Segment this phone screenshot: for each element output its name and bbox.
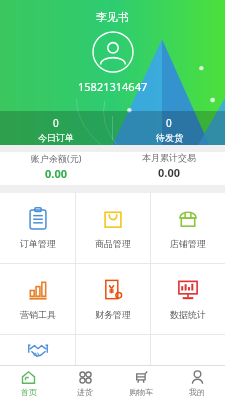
button[interactable]: 订单管理 [0,193,75,263]
button[interactable]: 本月累计交易 [112,152,225,180]
button[interactable]: 财务管理 [76,264,150,334]
staticText: 今日订单 [38,132,74,143]
button[interactable]: 数据统计 [151,264,225,334]
staticText: 0 [53,116,59,130]
staticText: 待发货 [156,132,183,143]
staticText: 数据统计 [170,309,206,320]
staticText: 购物车 [129,387,153,397]
button[interactable]: 0 [113,111,225,143]
staticText: 店铺管理 [170,238,206,249]
staticText: 首页 [21,387,37,397]
staticText: 我的 [189,387,205,397]
staticText: 0.00 [158,165,180,180]
button[interactable]: 商品管理 [76,193,150,263]
button[interactable]: 首页 [0,366,57,400]
button[interactable]: 0 [0,111,112,143]
staticText: 15821314647 [78,79,148,94]
staticText: 0 [166,116,172,130]
staticText: 进货 [77,387,93,397]
staticText: 财务管理 [95,309,131,320]
button[interactable]: 进货 [57,366,113,400]
staticText: 订单管理 [20,238,56,249]
button[interactable]: 我的 [169,366,225,400]
staticText: 李见书 [96,10,129,24]
button[interactable]: 营销工具 [0,264,75,334]
button[interactable]: 购物车 [113,366,169,400]
button[interactable] [0,335,75,365]
staticText: 本月累计交易 [142,152,196,163]
staticText: 商品管理 [95,238,131,249]
staticText: 0.00 [45,166,67,181]
staticText: 营销工具 [20,309,56,320]
button[interactable]: 账户余额(元) [0,152,112,181]
staticText: 账户余额(元) [31,152,82,164]
button[interactable]: 店铺管理 [151,193,225,263]
